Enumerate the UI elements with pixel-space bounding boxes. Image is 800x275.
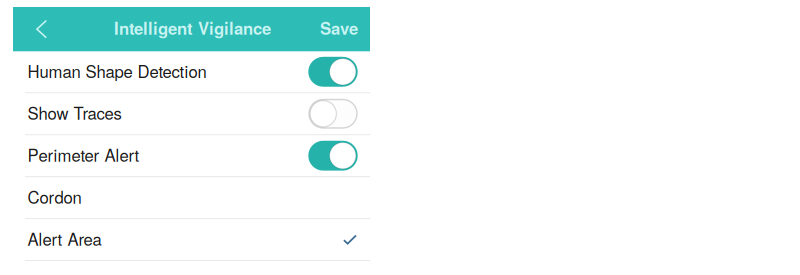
staticText: Cordon bbox=[28, 185, 82, 208]
button[interactable]: Alert Area bbox=[13, 219, 370, 260]
staticText: Save bbox=[320, 16, 358, 40]
button[interactable]: Back bbox=[13, 7, 60, 51]
staticText: Show Traces bbox=[28, 101, 122, 125]
button[interactable]: Human Shape Detection bbox=[13, 51, 370, 92]
staticText: Alert Area bbox=[28, 226, 102, 250]
staticText: Human Shape Detection bbox=[28, 59, 207, 83]
button[interactable]: Perimeter Alert bbox=[13, 135, 370, 176]
staticText: Perimeter Alert bbox=[28, 143, 140, 166]
button[interactable]: Save bbox=[320, 7, 370, 51]
button[interactable]: Cordon bbox=[13, 177, 370, 218]
button[interactable]: Show Traces bbox=[13, 93, 370, 134]
staticText: Intelligent Vigilance bbox=[114, 16, 271, 40]
